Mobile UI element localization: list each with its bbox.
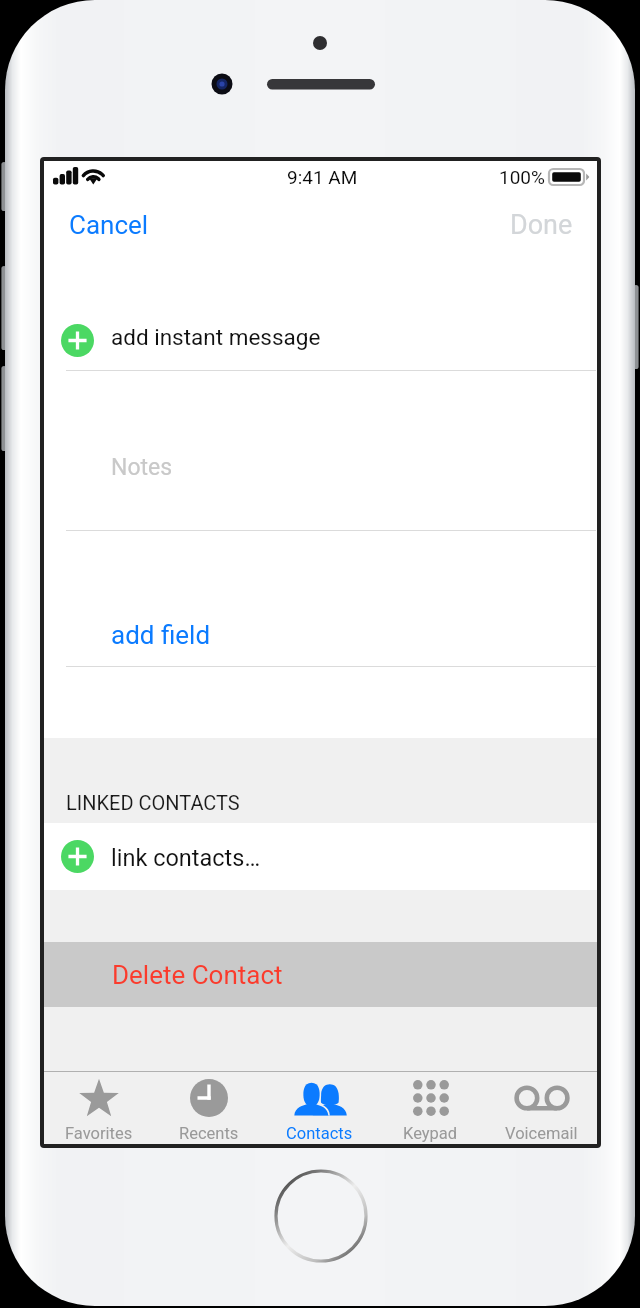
staticText: 9:41 AM — [287, 166, 358, 188]
button[interactable]: Contacts — [264, 1072, 375, 1144]
staticText: Keypad — [403, 1124, 458, 1143]
button[interactable]: Done — [490, 199, 597, 251]
button[interactable]: Recents — [154, 1072, 264, 1144]
staticText: LINKED CONTACTS — [66, 791, 240, 814]
staticText: Delete Contact — [112, 960, 283, 990]
button[interactable]: add instant message — [44, 309, 597, 371]
button[interactable]: Cancel — [44, 200, 169, 250]
button[interactable]: Notes — [44, 371, 597, 530]
staticText: Recents — [179, 1124, 239, 1143]
staticText: 100% — [499, 166, 545, 188]
staticText: Contacts — [286, 1124, 353, 1143]
staticText: Voicemail — [505, 1124, 578, 1143]
button[interactable]: add field — [44, 531, 597, 666]
staticText: Done — [510, 209, 573, 241]
staticText: add instant message — [111, 324, 321, 350]
staticText: Notes — [111, 454, 173, 481]
staticText: Favorites — [65, 1124, 133, 1143]
button[interactable]: Delete Contact — [44, 942, 597, 1007]
button[interactable]: Keypad — [375, 1072, 486, 1144]
staticText: link contacts… — [111, 844, 261, 872]
button[interactable]: link contacts… — [44, 823, 597, 890]
button[interactable]: Voicemail — [486, 1072, 597, 1144]
button[interactable]: Favorites — [44, 1072, 154, 1144]
staticText: Cancel — [69, 210, 149, 240]
staticText: add field — [111, 620, 211, 650]
